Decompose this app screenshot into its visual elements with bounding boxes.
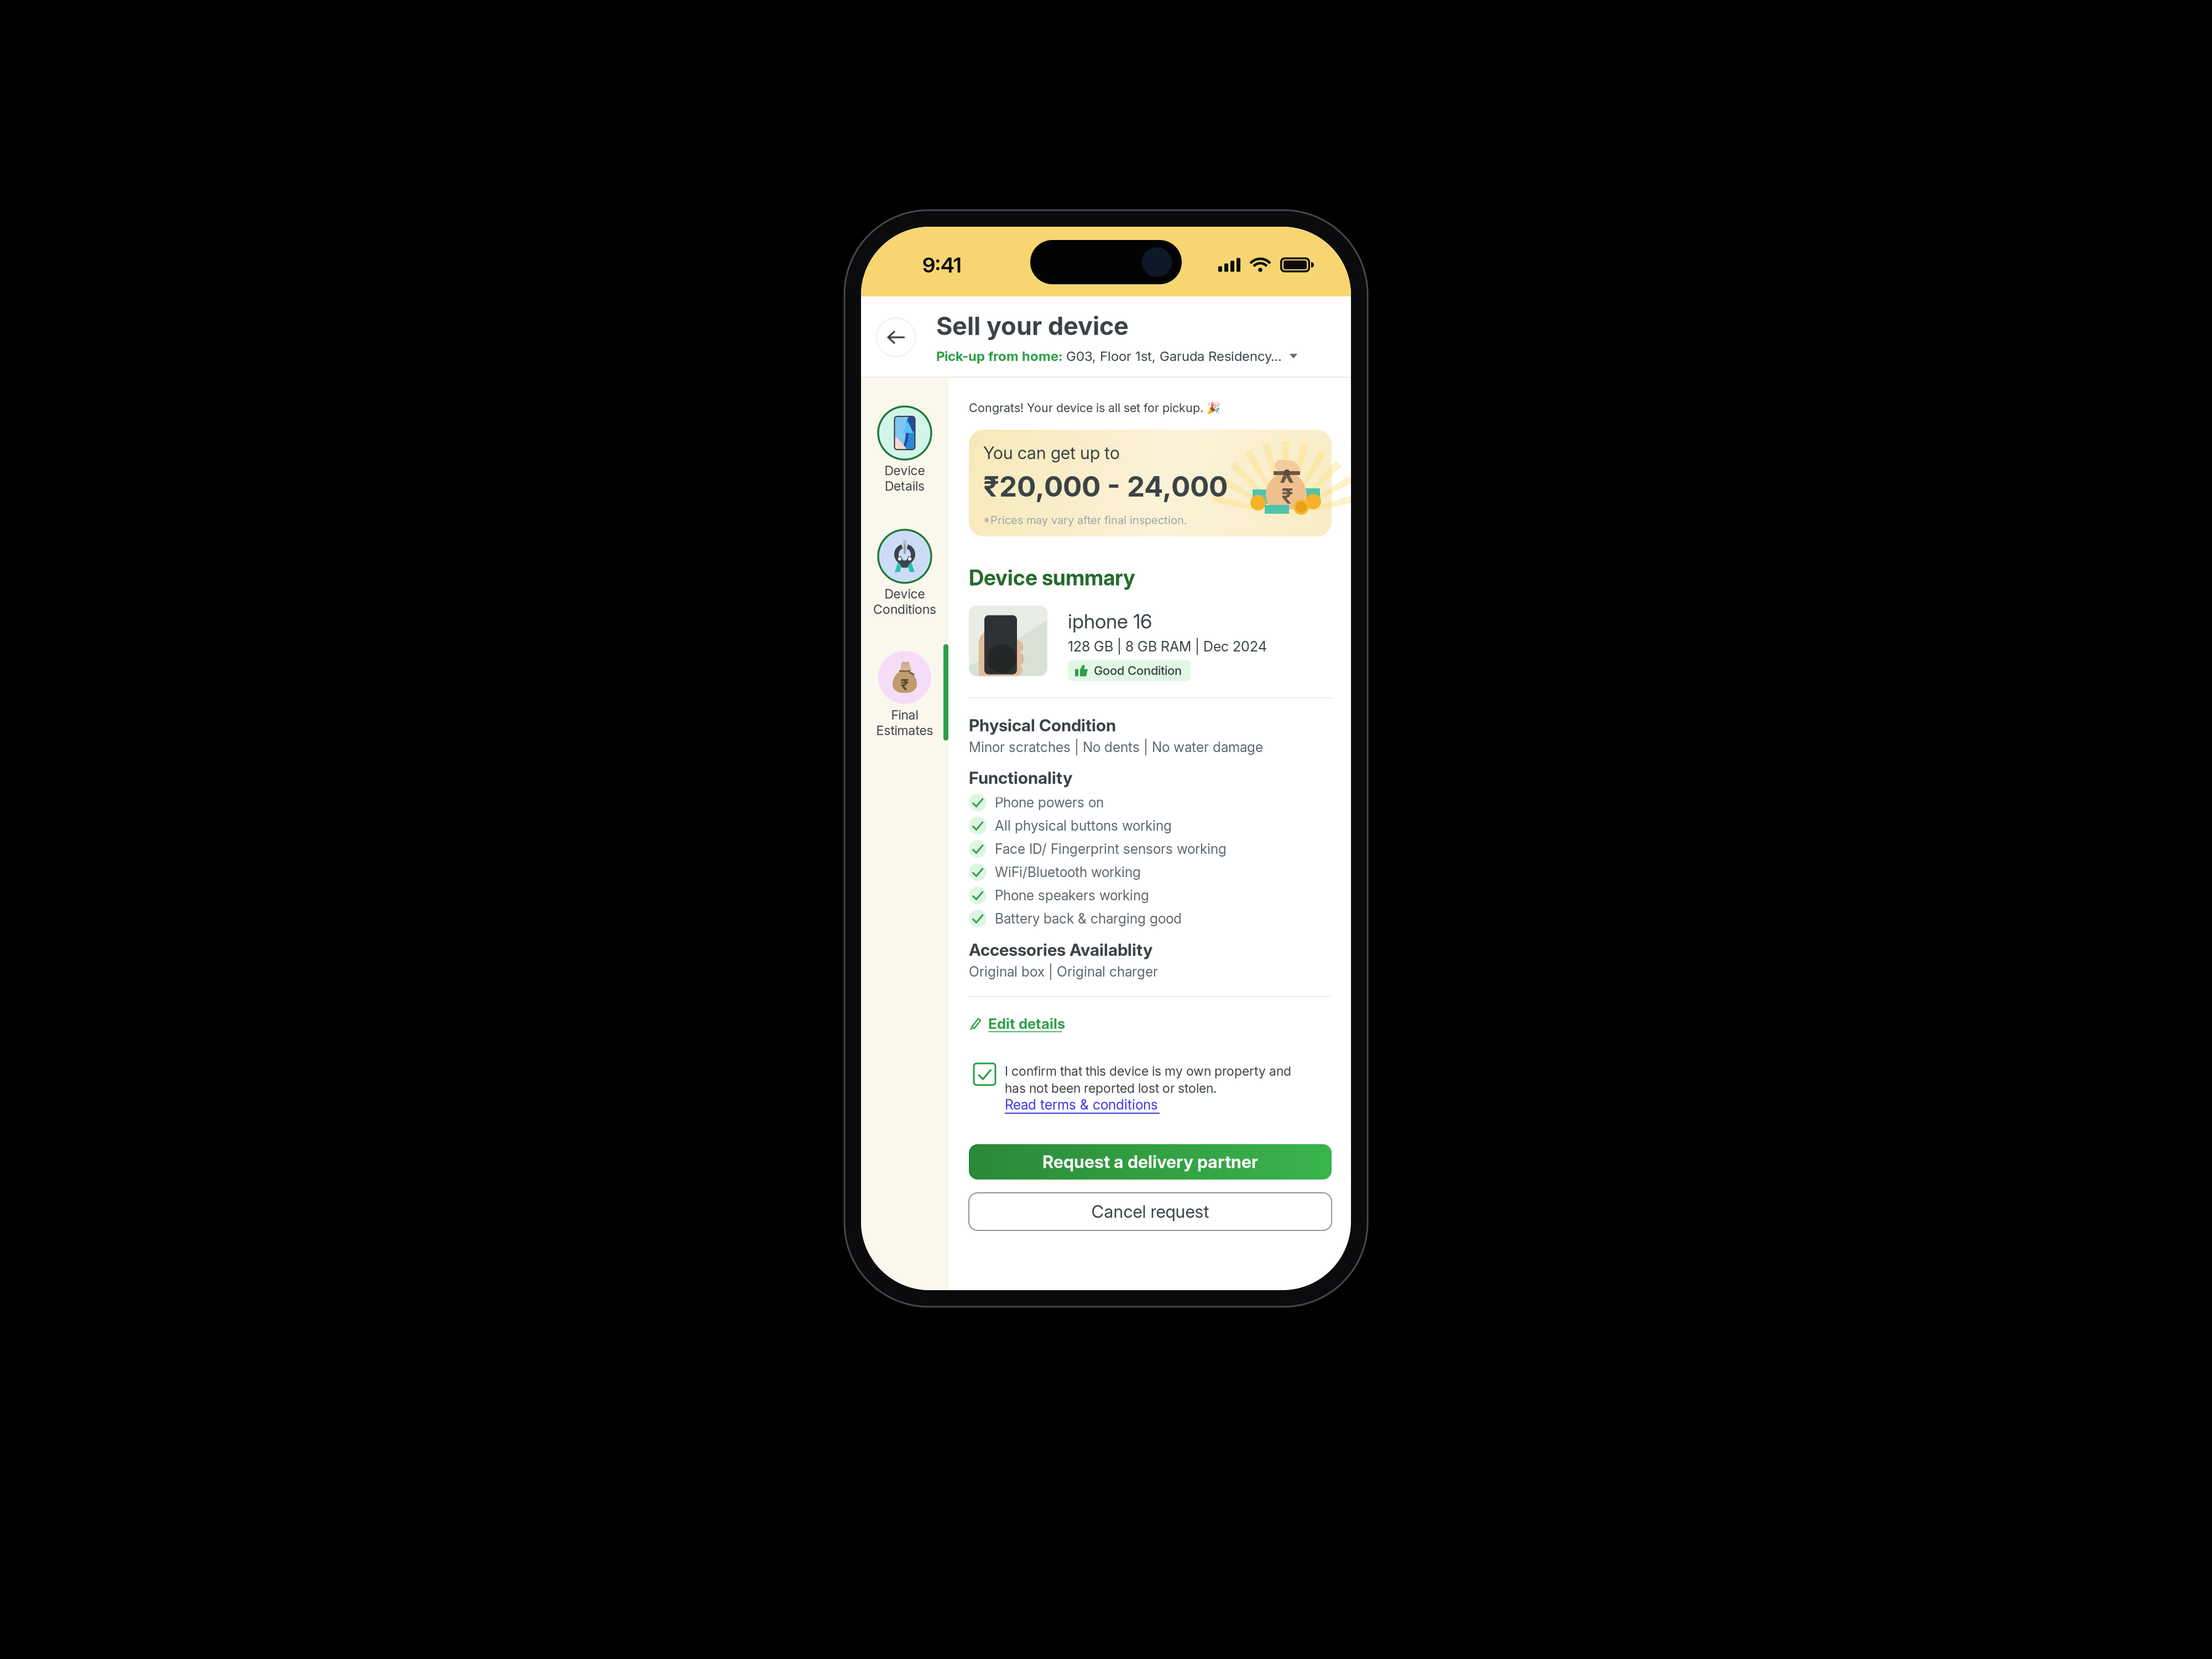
staticText: Estimates <box>876 723 933 738</box>
button[interactable]: ₹ <box>861 651 948 738</box>
staticText: Congrats! Your device is all set for pic… <box>969 401 1203 415</box>
staticText: I confirm that this device is my own pro… <box>1005 1063 1291 1079</box>
staticText: Device <box>885 586 925 602</box>
staticText: Details <box>885 478 925 494</box>
button[interactable]: Read terms & conditions <box>1005 1097 1160 1114</box>
button[interactable]: Pick-up from home: <box>936 348 1345 364</box>
button[interactable]: Request a delivery partner <box>969 1144 1332 1180</box>
staticText: Device <box>885 463 925 478</box>
staticText: You can get up to <box>983 443 1120 463</box>
staticText: Face ID/ Fingerprint sensors working <box>995 841 1227 857</box>
staticText: Accessories Availablity <box>969 940 1152 960</box>
button[interactable]: Confirm ownership <box>974 1063 995 1085</box>
staticText: *Prices may vary after final inspection. <box>983 513 1187 527</box>
staticText: Final <box>891 707 918 723</box>
staticText: has not been reported lost or stolen. <box>1005 1081 1217 1096</box>
staticText: iphone 16 <box>1068 609 1152 633</box>
staticText: Edit details <box>988 1015 1065 1032</box>
staticText: Request a delivery partner <box>1042 1151 1258 1172</box>
staticText: Sell your device <box>936 311 1129 341</box>
staticText: Cancel request <box>1091 1201 1209 1222</box>
staticText: Good Condition <box>1094 663 1182 678</box>
staticText: 128 GB | 8 GB RAM | Dec 2024 <box>1068 638 1267 655</box>
staticText: Phone powers on <box>995 794 1104 811</box>
staticText: 🎉 <box>1203 401 1220 415</box>
button[interactable]: Cancel request <box>969 1193 1332 1230</box>
staticText: ₹20,000 - 24,000 <box>983 469 1228 503</box>
staticText: Conditions <box>873 602 936 617</box>
staticText: Functionality <box>969 768 1072 788</box>
staticText: Device summary <box>969 565 1135 590</box>
staticText: Pick-up from home: <box>936 348 1066 364</box>
staticText: Original box | Original charger <box>969 963 1158 980</box>
staticText: Phone speakers working <box>995 887 1149 903</box>
staticText: G03, Floor 1st, Garuda Residency… <box>1066 348 1282 364</box>
staticText: Minor scratches | No dents | No water da… <box>969 739 1263 755</box>
button[interactable]: Edit details <box>969 1014 1332 1034</box>
staticText: WiFi/Bluetooth working <box>995 864 1141 880</box>
button[interactable]: Device <box>861 406 948 494</box>
staticText: Physical Condition <box>969 715 1116 735</box>
staticText: Read terms & conditions <box>1005 1096 1158 1113</box>
staticText: ₹ <box>901 676 909 694</box>
staticText: 9:41 <box>922 252 962 278</box>
button[interactable]: Back <box>877 318 915 357</box>
staticText: ₹ <box>1282 483 1293 509</box>
button[interactable]: Device <box>861 530 948 617</box>
staticText: Battery back & charging good <box>995 910 1182 927</box>
staticText: All physical buttons working <box>995 817 1172 834</box>
